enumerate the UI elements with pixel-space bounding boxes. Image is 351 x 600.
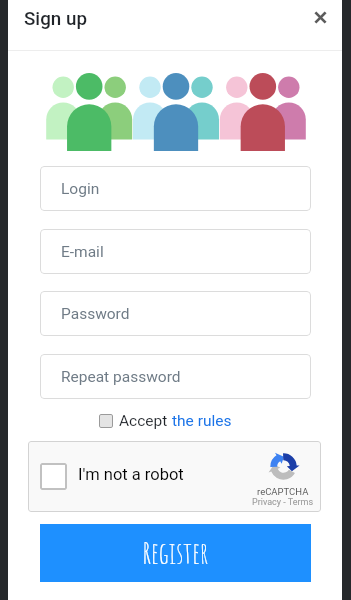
- staticText: Accept: [119, 412, 172, 430]
- button[interactable]: Repeat password: [40, 354, 311, 399]
- staticText: Login: [61, 180, 100, 198]
- staticText: E-mail: [61, 243, 104, 261]
- staticText: I'm not a robot: [78, 465, 184, 484]
- button[interactable]: the rules: [172, 412, 232, 430]
- staticText: Repeat password: [61, 368, 181, 386]
- staticText: Password: [61, 305, 130, 323]
- button[interactable]: Password: [40, 291, 311, 336]
- staticText: Privacy - Terms: [252, 497, 314, 508]
- staticText: Register: [142, 534, 209, 572]
- button[interactable]: Register: [40, 524, 311, 582]
- button[interactable]: Login: [40, 166, 311, 211]
- staticText: Sign up: [24, 8, 87, 30]
- staticText: reCAPTCHA: [257, 486, 309, 497]
- button[interactable]: Accept the rules: [99, 414, 113, 428]
- button[interactable]: I'm not a robot: [40, 463, 67, 490]
- button[interactable]: Close: [306, 2, 334, 30]
- button[interactable]: E-mail: [40, 229, 311, 274]
